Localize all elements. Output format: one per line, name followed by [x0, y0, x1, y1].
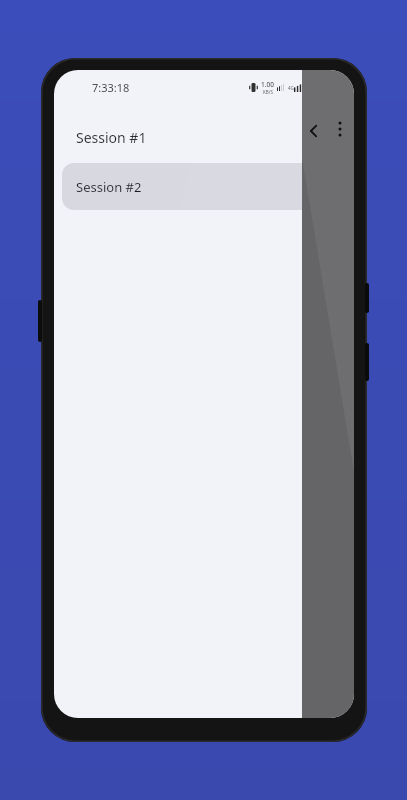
staticText: KB/S	[263, 89, 273, 95]
staticText: 7:33:18	[92, 80, 130, 95]
staticText: Session #2	[76, 178, 142, 196]
button[interactable]: More options	[326, 115, 354, 143]
staticText: 4G	[288, 85, 294, 91]
button[interactable]: Back	[298, 115, 330, 147]
staticText: Session #1	[76, 128, 147, 147]
button[interactable]: Session #2	[62, 163, 346, 210]
staticText: 1.00	[261, 80, 274, 89]
